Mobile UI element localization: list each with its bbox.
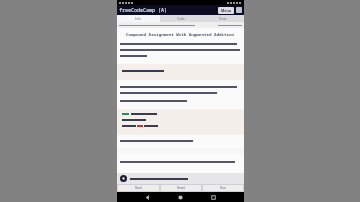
button[interactable]: Test status — [117, 173, 244, 184]
button[interactable]: Home — [178, 195, 183, 200]
staticText: Run — [220, 186, 226, 190]
staticText: Info — [135, 17, 142, 21]
staticText: Reset — [177, 186, 186, 190]
button[interactable]: Code — [160, 15, 202, 22]
button[interactable]: Recents — [211, 195, 216, 200]
button[interactable]: Back — [145, 195, 150, 200]
other: Test status — [120, 175, 127, 182]
staticText: freeCodeCamp (A) — [119, 7, 168, 14]
staticText: Menu — [221, 8, 231, 13]
button[interactable]: Info — [117, 15, 160, 22]
button[interactable]: Menu — [218, 7, 234, 14]
button[interactable]: Account — [236, 7, 242, 13]
staticText: Code — [177, 17, 185, 21]
button[interactable]: Run — [203, 185, 243, 191]
staticText: Back — [135, 186, 143, 190]
button[interactable]: Reset — [161, 185, 201, 191]
button[interactable]: Tests — [202, 15, 244, 22]
staticText: Compound Assignment With Augmented Addit… — [126, 32, 235, 38]
staticText: Tests — [219, 17, 227, 21]
button[interactable]: Back — [118, 185, 159, 191]
